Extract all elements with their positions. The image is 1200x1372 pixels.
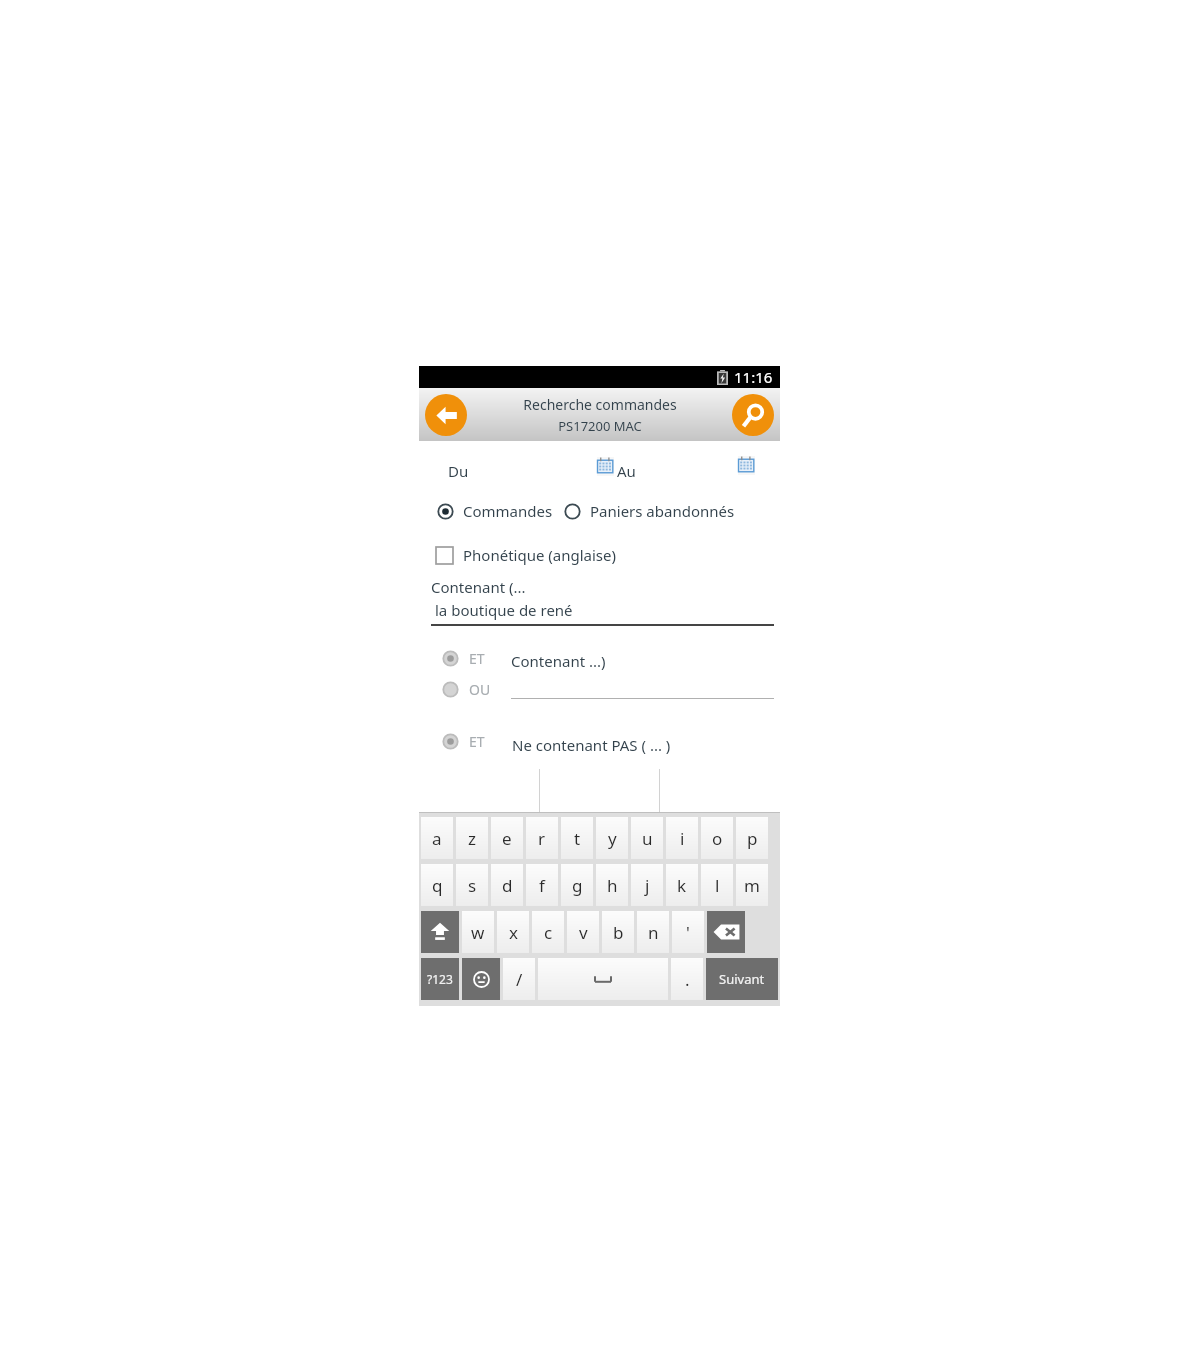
button[interactable]: ?123 [421,958,459,1000]
staticText: ET [469,732,485,751]
button[interactable]: / [503,958,535,1000]
button[interactable]: i [666,817,698,859]
button[interactable]: m [736,864,768,906]
staticText: m [744,874,760,897]
button[interactable]: OU [442,680,491,699]
button[interactable]: s [456,864,488,906]
staticText: Commandes [463,501,553,521]
button[interactable]: n [637,911,669,953]
button[interactable]: c [532,911,564,953]
button[interactable]: v [567,911,599,953]
staticText: f [539,874,545,897]
button[interactable]: Backspace [707,911,745,953]
staticText: y [608,827,617,850]
button[interactable]: Shift [421,911,459,953]
button[interactable]: h [596,864,628,906]
button[interactable]: q [421,864,453,906]
staticText: z [468,827,476,850]
button[interactable]: x [497,911,529,953]
button[interactable]: Paniers abandonnés [564,501,735,521]
staticText: ET [469,649,485,668]
staticText: Recherche commandes [523,395,677,414]
button[interactable]: Emoji [462,958,500,1000]
staticText: c [544,921,553,944]
staticText: h [607,874,618,897]
button[interactable]: t [561,817,593,859]
staticText: Ne contenant PAS ( ... ) [512,735,671,755]
button[interactable]: Phonétique (anglaise) [436,545,617,565]
staticText: w [471,921,485,944]
button[interactable]: Suivant [706,958,778,1000]
staticText: j [645,874,650,897]
button[interactable]: la boutique de rené [431,598,774,624]
staticText: i [680,827,685,850]
button[interactable]: d [491,864,523,906]
button[interactable]: . [671,958,703,1000]
button[interactable]: g [561,864,593,906]
button[interactable]: u [631,817,663,859]
button[interactable]: a [421,817,453,859]
staticText: Phonétique (anglaise) [463,545,617,565]
staticText: . [685,968,690,991]
staticText: a [432,827,442,850]
staticText: OU [469,680,491,699]
staticText: q [432,874,443,897]
staticText: Du [448,461,469,481]
staticText: k [677,874,687,897]
staticText: ?123 [427,971,453,987]
staticText: / [516,968,523,991]
staticText: PS17200 MAC [558,417,642,435]
staticText: o [712,827,723,850]
button[interactable]: l [701,864,733,906]
button[interactable]: e [491,817,523,859]
staticText: u [642,827,653,850]
staticText: v [579,921,588,944]
staticText: Suivant [719,970,765,988]
button[interactable]: z [456,817,488,859]
button[interactable]: Back [425,394,467,436]
staticText: l [715,874,720,897]
button[interactable]: r [526,817,558,859]
button[interactable]: j [631,864,663,906]
staticText: 11:16 [734,367,773,387]
button[interactable]: ET [442,649,485,668]
button[interactable]: ET [442,732,485,751]
staticText: Paniers abandonnés [590,501,735,521]
staticText: n [648,921,659,944]
button[interactable]: Pick start date [597,457,616,478]
button[interactable]: y [596,817,628,859]
button[interactable]: Space [538,958,668,1000]
staticText: e [502,827,512,850]
staticText: ' [686,921,690,944]
staticText: g [572,874,583,897]
staticText: d [502,874,513,897]
button[interactable]: w [462,911,494,953]
button[interactable]: p [736,817,768,859]
staticText: r [538,827,546,850]
button[interactable]: Commandes [437,501,553,521]
staticText: Au [617,461,636,481]
staticText: t [574,827,581,850]
button[interactable]: Contenant ...) [511,651,606,671]
staticText: b [613,921,624,944]
staticText: Contenant ...) [511,651,606,671]
button[interactable]: Search [732,394,774,436]
button[interactable]: f [526,864,558,906]
staticText: la boutique de rené [435,600,573,620]
staticText: x [509,921,518,944]
button[interactable]: o [701,817,733,859]
button[interactable]: Ne contenant PAS ( ... ) [512,735,671,755]
staticText: p [747,827,758,850]
button[interactable]: ' [672,911,704,953]
staticText: Contenant (... [431,577,526,597]
button[interactable]: Pick end date [738,456,757,477]
button[interactable]: k [666,864,698,906]
button[interactable]: b [602,911,634,953]
staticText: s [468,874,477,897]
